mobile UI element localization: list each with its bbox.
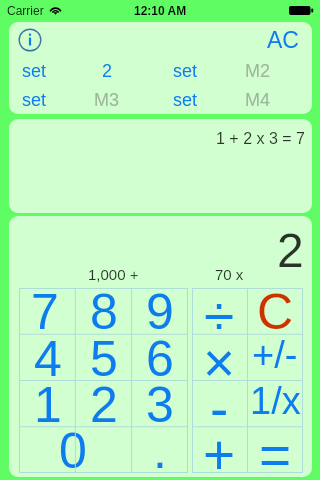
button[interactable]: 9: [132, 288, 188, 335]
staticText: 12:10 AM: [134, 4, 187, 17]
staticText: 1,000 +: [88, 266, 139, 283]
staticText: 1: [34, 377, 62, 423]
button[interactable]: 8: [76, 288, 132, 335]
staticText: 1 + 2 x 3 = 7: [216, 130, 305, 148]
staticText: ×: [203, 332, 236, 378]
staticText: M3: [94, 90, 120, 110]
button[interactable]: ÷: [192, 288, 247, 335]
button[interactable]: 0: [19, 427, 132, 473]
button[interactable]: .: [132, 427, 188, 473]
staticText: Carrier: [7, 4, 44, 17]
staticText: =: [259, 424, 292, 470]
staticText: AC: [267, 27, 299, 53]
button[interactable]: C: [247, 288, 303, 335]
button[interactable]: set: [9, 56, 59, 85]
staticText: 7: [31, 284, 59, 331]
staticText: +/-: [252, 334, 298, 376]
staticText: .: [153, 423, 167, 469]
staticText: C: [257, 284, 294, 331]
button[interactable]: 2: [76, 381, 132, 427]
staticText: set: [22, 61, 47, 81]
staticText: 9: [146, 284, 174, 331]
staticText: 2: [277, 224, 304, 278]
button[interactable]: -: [192, 381, 247, 427]
button[interactable]: +/-: [247, 335, 303, 381]
staticText: 1/x: [250, 380, 301, 422]
button[interactable]: 1: [19, 381, 76, 427]
button[interactable]: ×: [192, 335, 247, 381]
button[interactable]: set: [9, 85, 59, 114]
button[interactable]: M4: [210, 85, 306, 114]
button[interactable]: +: [192, 427, 247, 473]
staticText: 70 x: [215, 266, 244, 283]
staticText: 0: [59, 423, 87, 469]
button[interactable]: M3: [59, 85, 155, 114]
button[interactable]: set: [160, 85, 210, 114]
button[interactable]: 4: [19, 335, 76, 381]
button[interactable]: set: [160, 56, 210, 85]
staticText: set: [173, 61, 198, 81]
staticText: M2: [245, 61, 271, 81]
staticText: 2: [90, 377, 118, 423]
button[interactable]: AC: [267, 27, 299, 53]
button[interactable]: =: [247, 427, 303, 473]
staticText: 6: [146, 331, 174, 377]
button[interactable]: M2: [210, 56, 306, 85]
staticText: set: [173, 90, 198, 110]
staticText: 4: [34, 331, 62, 377]
staticText: +: [203, 424, 236, 470]
staticText: -: [210, 378, 229, 424]
staticText: 8: [90, 284, 118, 331]
staticText: ÷: [204, 285, 235, 332]
staticText: M4: [245, 90, 271, 110]
button[interactable]: 2: [59, 56, 155, 85]
button[interactable]: Info: [18, 28, 42, 52]
button[interactable]: 1/x: [247, 381, 303, 427]
staticText: 3: [146, 377, 174, 423]
staticText: 5: [90, 331, 118, 377]
button[interactable]: 3: [132, 381, 188, 427]
staticText: 2: [102, 61, 113, 81]
button[interactable]: 5: [76, 335, 132, 381]
button[interactable]: 7: [19, 288, 76, 335]
button[interactable]: 6: [132, 335, 188, 381]
staticText: set: [22, 90, 47, 110]
